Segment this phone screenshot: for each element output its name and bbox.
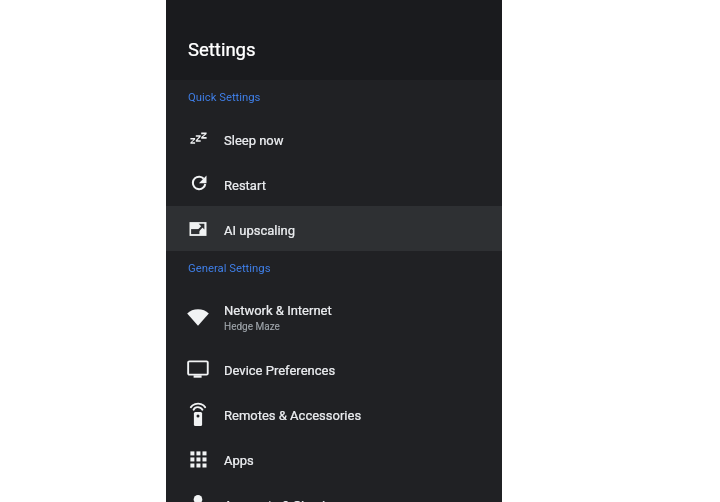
staticText: Quick Settings bbox=[188, 91, 261, 104]
button[interactable]: Device Preferences bbox=[166, 346, 502, 391]
button[interactable]: AI upscaling bbox=[166, 206, 502, 251]
staticText: Accounts & Sign in bbox=[224, 498, 333, 502]
button[interactable]: Restart bbox=[166, 161, 502, 206]
staticText: Hedge Maze bbox=[224, 321, 280, 333]
button[interactable]: Accounts & Sign in bbox=[166, 481, 502, 502]
staticText: Restart bbox=[224, 178, 266, 193]
staticText: Device Preferences bbox=[224, 363, 336, 378]
staticText: AI upscaling bbox=[224, 223, 296, 238]
staticText: Network & Internet bbox=[224, 303, 332, 318]
button[interactable]: Network & Internet bbox=[166, 287, 502, 346]
staticText: Remotes & Accessories bbox=[224, 408, 362, 423]
staticText: Apps bbox=[224, 453, 254, 468]
staticText: Sleep now bbox=[224, 133, 284, 148]
staticText: General Settings bbox=[188, 262, 271, 275]
button[interactable]: Remotes & Accessories bbox=[166, 391, 502, 436]
staticText: Settings bbox=[188, 39, 256, 61]
button[interactable]: Apps bbox=[166, 436, 502, 481]
button[interactable]: Sleep now bbox=[166, 116, 502, 161]
